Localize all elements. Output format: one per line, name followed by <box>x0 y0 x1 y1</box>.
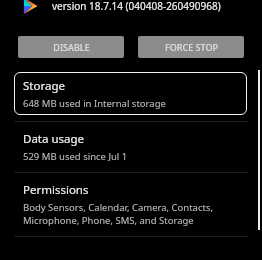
other: Google Play Store <box>21 0 39 15</box>
staticText: FORCE STOP <box>165 41 218 53</box>
staticText: DISABLE <box>53 41 90 53</box>
staticText: Storage <box>23 78 65 94</box>
button[interactable]: FORCE STOP <box>138 36 244 58</box>
staticText: 648 MB used in Internal storage <box>23 97 166 110</box>
staticText: 529 MB used since Jul 1 <box>23 150 128 163</box>
button[interactable]: Data usage <box>0 122 262 172</box>
staticText: Body Sensors, Calendar, Camera, Contacts… <box>23 201 214 214</box>
staticText: Permissions <box>23 182 89 198</box>
button[interactable]: Permissions <box>0 173 262 236</box>
staticText: Microphone, Phone, SMS, and Storage <box>23 214 194 227</box>
button[interactable]: Storage <box>14 72 247 115</box>
button[interactable]: DISABLE <box>18 36 124 58</box>
staticText: Data usage <box>23 131 85 147</box>
staticText: version 18.7.14 (040408-260490968) <box>52 0 221 13</box>
